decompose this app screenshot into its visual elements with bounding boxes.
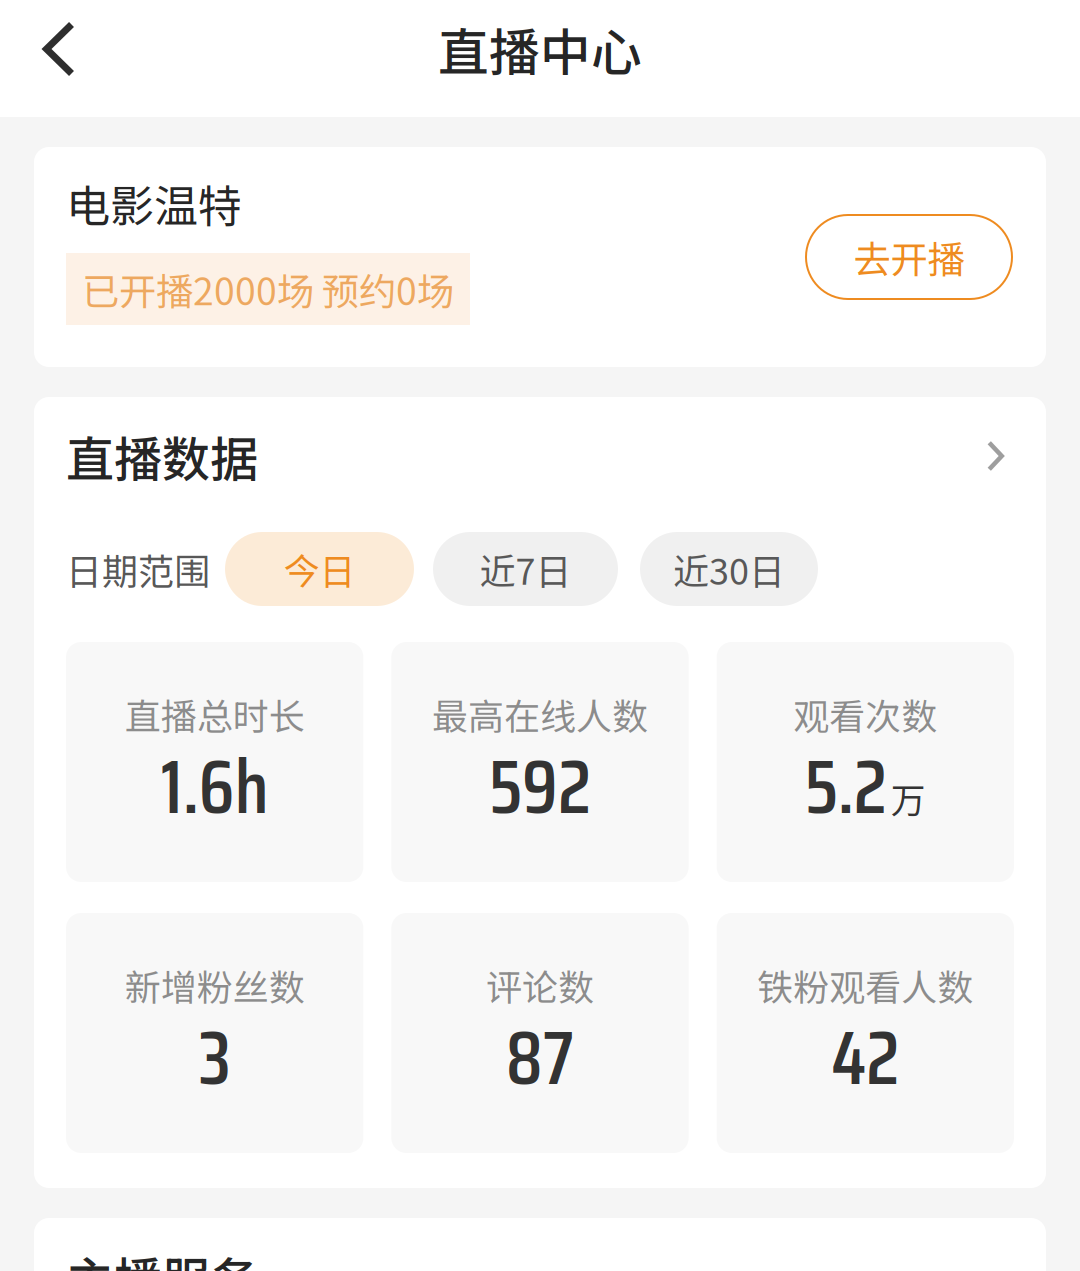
staticText: 42 [831, 999, 899, 1117]
staticText: 直播中心 [438, 12, 642, 86]
button[interactable]: Back [0, 0, 109, 98]
staticText: 最高在线人数 [432, 688, 648, 740]
button[interactable]: 今日 [225, 532, 414, 606]
button[interactable]: 去开播 [806, 215, 1012, 299]
staticText: 592 [489, 728, 591, 846]
staticText: 直播数据 [66, 421, 258, 491]
staticText: 主播服务 [66, 1242, 258, 1271]
staticText: 新增粉丝数 [125, 959, 305, 1011]
staticText: 3 [199, 999, 231, 1117]
staticText: 铁粉观看人数 [757, 959, 973, 1011]
staticText: 直播总时长 [125, 688, 305, 740]
button[interactable]: 近7日 [433, 532, 618, 606]
staticText: 5.2 [805, 728, 887, 846]
button[interactable]: 直播数据 [66, 428, 1014, 484]
staticText: 日期范围 [66, 543, 210, 595]
staticText: 近30日 [673, 543, 785, 595]
staticText: 1.6h [161, 728, 269, 846]
staticText: 观看次数 [793, 688, 937, 740]
button[interactable]: 近30日 [640, 532, 818, 606]
staticText: 近7日 [479, 543, 571, 595]
staticText: 已开播2000场 预约0场 [82, 262, 454, 316]
staticText: 87 [506, 999, 574, 1117]
staticText: 万 [891, 773, 926, 823]
staticText: 评论数 [486, 959, 594, 1011]
staticText: 电影温特 [66, 171, 242, 235]
staticText: 今日 [283, 543, 355, 595]
staticText: 去开播 [853, 230, 964, 284]
